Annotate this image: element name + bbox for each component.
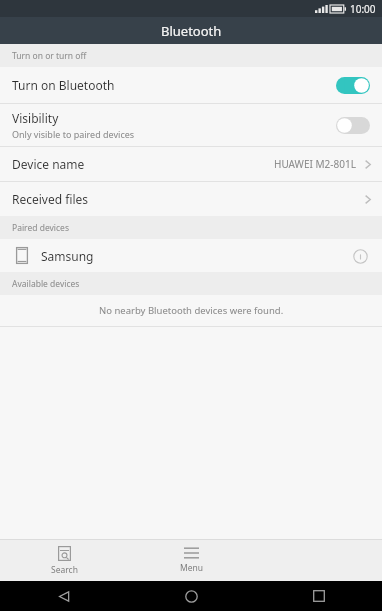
button[interactable]: Recent apps xyxy=(255,581,382,611)
staticText: Turn on Bluetooth xyxy=(12,77,115,93)
button[interactable]: Search xyxy=(0,542,128,580)
staticText: Device name xyxy=(12,156,85,172)
staticText: Available devices xyxy=(12,278,80,290)
staticText: Visibility xyxy=(12,110,59,126)
staticText: No nearby Bluetooth devices were found. xyxy=(99,304,284,317)
staticText: Only visible to paired devices xyxy=(12,128,135,140)
staticText: Received files xyxy=(12,191,89,207)
staticText: Turn on or turn off xyxy=(12,50,87,62)
button[interactable]: Back xyxy=(0,581,128,611)
button[interactable]: Device name xyxy=(0,147,382,181)
staticText: Paired devices xyxy=(12,222,69,234)
staticText: 10:00 xyxy=(350,2,376,16)
button[interactable]: Menu xyxy=(128,543,255,578)
button[interactable]: On xyxy=(336,77,370,94)
staticText: HUAWEI M2-801L xyxy=(274,157,356,171)
staticText: Samsung xyxy=(41,248,94,264)
staticText: Menu xyxy=(180,562,204,574)
button[interactable]: Visibility xyxy=(0,104,382,146)
staticText: Search xyxy=(51,564,78,576)
button[interactable]: Turn on Bluetooth xyxy=(0,67,382,103)
button[interactable]: Device settings xyxy=(350,246,370,266)
button[interactable]: Home xyxy=(128,581,255,611)
staticText: Bluetooth xyxy=(161,22,222,40)
button[interactable]: Samsung xyxy=(0,239,382,272)
button[interactable]: Received files xyxy=(0,182,382,216)
button[interactable]: Off xyxy=(336,117,370,134)
